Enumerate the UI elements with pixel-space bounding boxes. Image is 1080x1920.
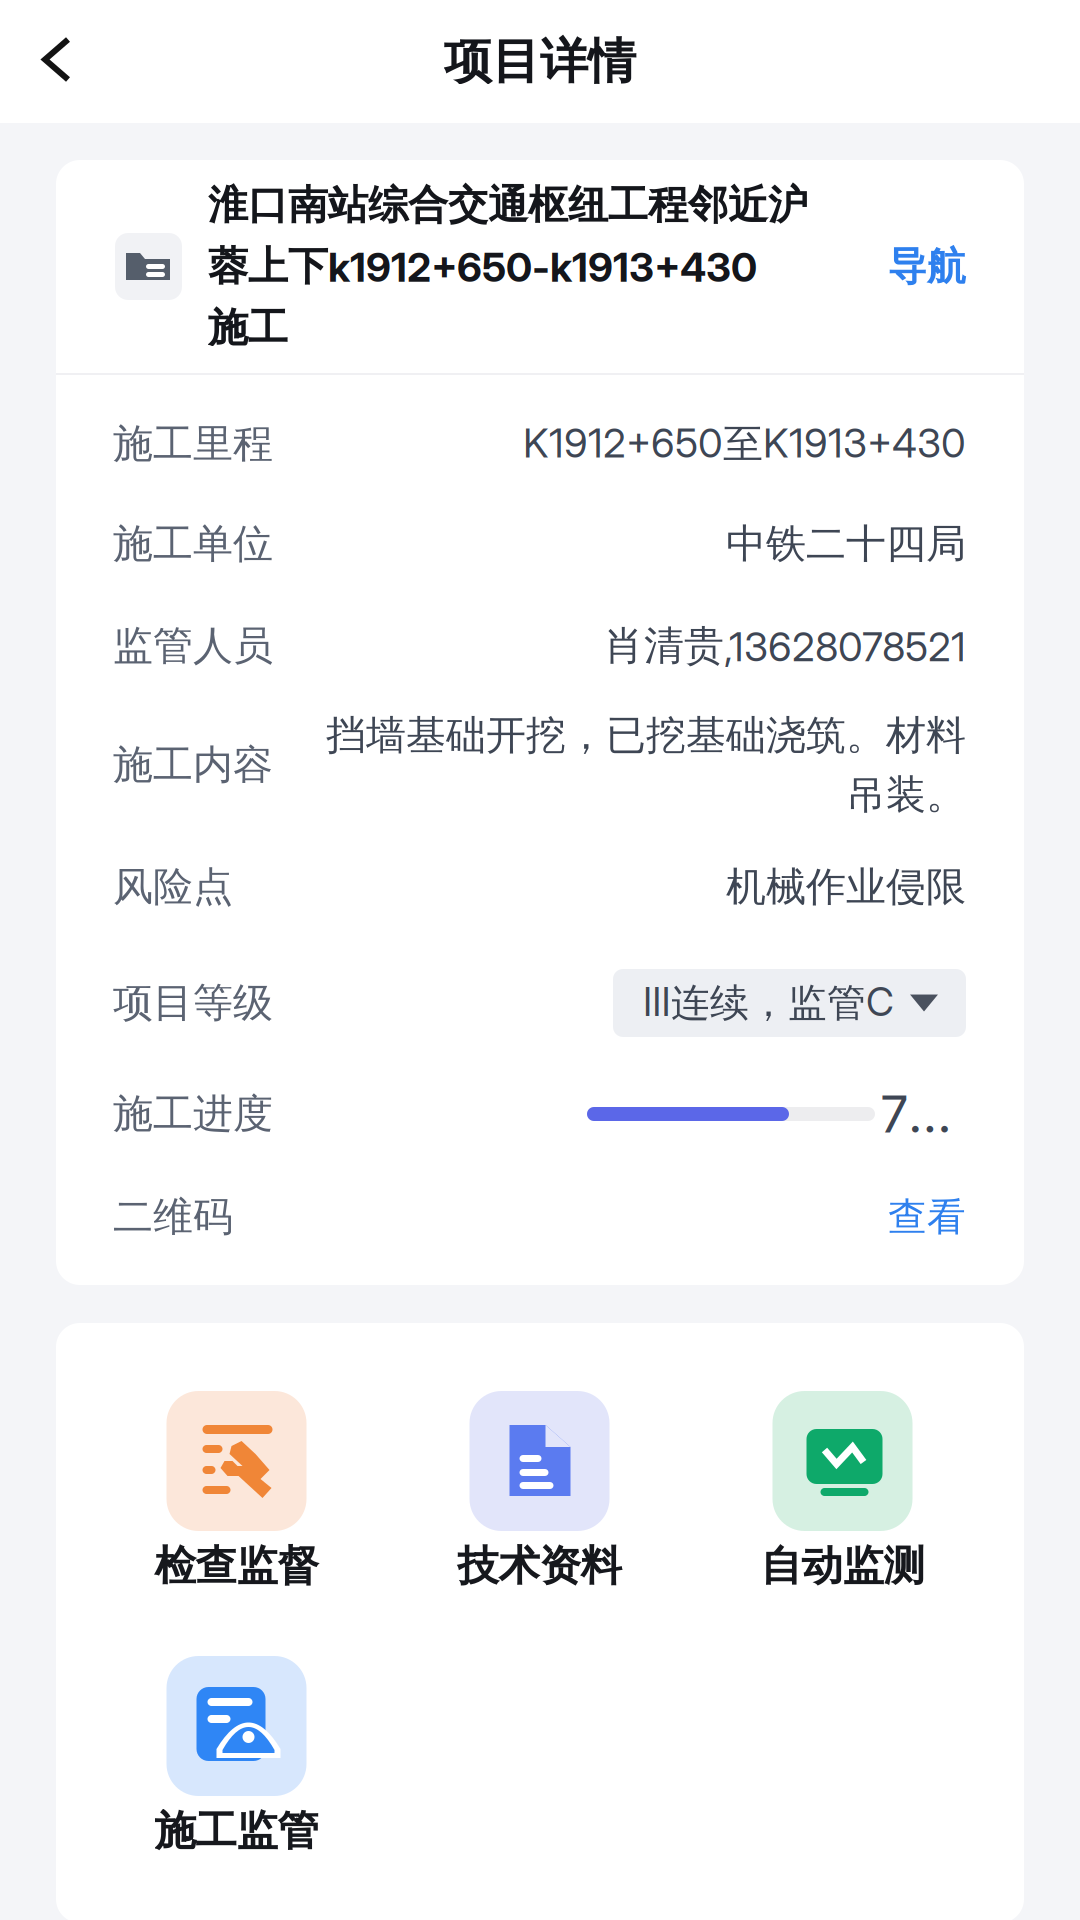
button[interactable]: 检查监督 xyxy=(85,1391,388,1601)
staticText: 施工 xyxy=(208,303,288,353)
staticText: K1912+650至K1913+430 xyxy=(523,419,966,469)
staticText: 蓉上下k1912+650-k1913+430 xyxy=(208,241,757,292)
staticText: 吊装。 xyxy=(846,769,966,820)
staticText: 肖清贵,13628078521 xyxy=(604,621,966,671)
staticText: 项目等级 xyxy=(113,978,273,1028)
staticText: 70% xyxy=(880,1083,966,1145)
staticText: 监管人员 xyxy=(113,621,273,671)
button[interactable]: 导航 xyxy=(846,231,966,301)
staticText: 淮口南站综合交通枢纽工程邻近沪 xyxy=(208,180,808,230)
staticText: 机械作业侵限 xyxy=(726,862,966,912)
staticText: 技术资料 xyxy=(457,1540,621,1592)
staticText: 检查监督 xyxy=(154,1540,318,1592)
staticText: 施工监管 xyxy=(154,1805,318,1857)
staticText: 查看 xyxy=(888,1193,966,1241)
staticText: 项目详情 xyxy=(444,31,636,92)
staticText: 自动监测 xyxy=(760,1540,924,1592)
button[interactable]: 自动监测 xyxy=(691,1391,994,1601)
staticText: Ⅲ连续，监管C xyxy=(643,978,894,1027)
staticText: 施工内容 xyxy=(113,740,273,790)
button[interactable]: 查看 xyxy=(846,1182,966,1252)
button[interactable]: 施工监管 xyxy=(85,1656,388,1866)
staticText: 施工单位 xyxy=(113,519,273,569)
staticText: 施工里程 xyxy=(113,419,273,469)
button[interactable]: 技术资料 xyxy=(388,1391,691,1601)
staticText: 施工进度 xyxy=(113,1089,273,1139)
staticText: 导航 xyxy=(888,242,966,291)
staticText: 风险点 xyxy=(113,862,233,912)
staticText: 挡墙基础开挖，已挖基础浇筑。材料 xyxy=(326,710,966,760)
staticText: 中铁二十四局 xyxy=(726,519,966,569)
staticText: 二维码 xyxy=(113,1192,233,1242)
button[interactable]: 返回 xyxy=(0,9,104,113)
